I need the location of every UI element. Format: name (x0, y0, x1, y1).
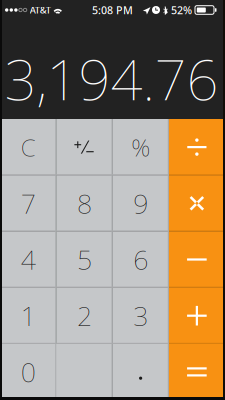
button[interactable] (169, 288, 225, 344)
staticText: 3,194.76 (4, 41, 218, 116)
button[interactable] (169, 344, 225, 400)
staticText: 1 (21, 298, 36, 333)
staticText: 8 (77, 186, 92, 221)
staticText: 7 (21, 186, 36, 221)
button[interactable]: 0 (0, 344, 112, 400)
staticText: 3 (133, 298, 148, 333)
button[interactable]: 5 (56, 231, 112, 288)
button[interactable] (169, 231, 225, 288)
button[interactable] (169, 175, 225, 231)
button[interactable]: 1 (0, 288, 56, 344)
button[interactable]: 6 (112, 231, 169, 288)
button[interactable]: C (0, 119, 56, 175)
button[interactable]: 7 (0, 175, 56, 231)
staticText: 5:08 PM (92, 3, 133, 17)
button[interactable] (112, 344, 169, 400)
staticText: 6 (133, 242, 148, 277)
staticText: AT&T (30, 4, 51, 16)
button[interactable] (56, 119, 112, 175)
staticText: 9 (133, 186, 148, 221)
staticText: 52% (171, 3, 192, 17)
staticText: C (21, 131, 36, 163)
button[interactable]: 4 (0, 231, 56, 288)
button[interactable]: 8 (56, 175, 112, 231)
staticText: 0 (21, 354, 36, 390)
button[interactable]: 9 (112, 175, 169, 231)
staticText: 4 (21, 242, 36, 277)
staticText: 5 (77, 242, 92, 277)
button[interactable] (169, 119, 225, 175)
staticText: 2 (77, 298, 92, 333)
button[interactable]: 3 (112, 288, 169, 344)
button[interactable]: % (112, 119, 169, 175)
button[interactable]: 2 (56, 288, 112, 344)
staticText: % (131, 131, 150, 163)
